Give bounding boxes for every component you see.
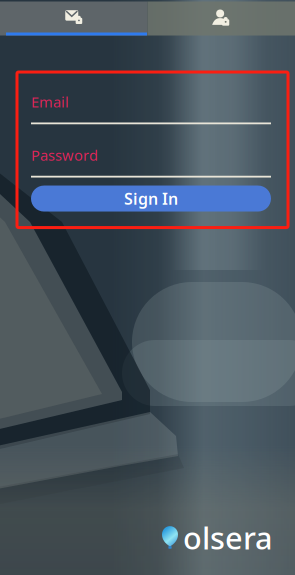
button[interactable]: Email sign in [0,1,147,35]
staticText: olsera [183,517,273,558]
staticText: Sign In [124,188,178,209]
button[interactable]: Member sign in [147,1,295,35]
staticText: Password [31,145,98,165]
button[interactable]: Sign In [31,186,271,212]
staticText: Email [31,92,69,111]
